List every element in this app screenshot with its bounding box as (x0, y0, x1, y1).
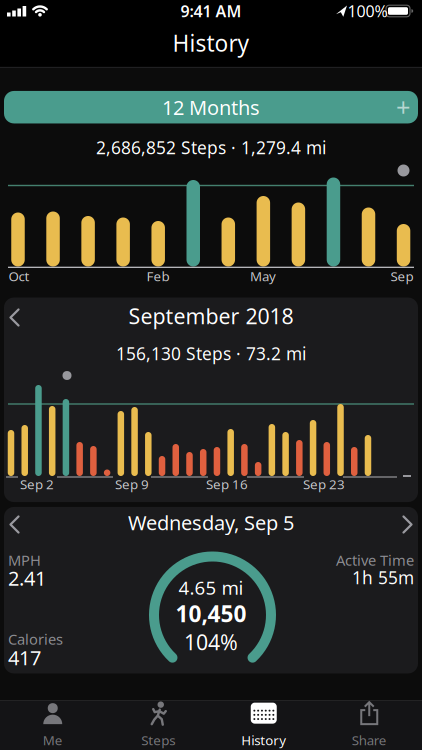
staticText: 4.65 mi (178, 575, 243, 600)
staticText: Feb (146, 267, 169, 285)
staticText: 417 (8, 644, 41, 671)
staticText: Sep 16 (206, 475, 248, 493)
staticText: 10,450 (175, 598, 246, 628)
staticText: 2.41 (8, 565, 46, 591)
staticText: Sep 23 (303, 475, 345, 493)
staticText: 156,130 Steps · 73.2 mi (116, 342, 306, 365)
staticText: Steps (141, 731, 175, 749)
staticText: Oct (8, 267, 29, 285)
staticText: September 2018 (128, 302, 293, 330)
staticText: 104% (184, 628, 238, 656)
button[interactable] (4, 507, 418, 673)
button[interactable]: Me (0, 700, 105, 749)
button[interactable]: Steps (106, 700, 211, 749)
staticText: 9:41 AM (180, 0, 241, 22)
staticText: MPH (8, 550, 41, 570)
staticText: Share (352, 731, 387, 749)
staticText: + (396, 90, 410, 124)
staticText: History (241, 731, 286, 749)
button[interactable]: Next day (396, 512, 418, 536)
staticText: Me (43, 731, 63, 749)
button[interactable]: 12 Months (4, 91, 418, 123)
staticText: 12 Months (162, 94, 260, 120)
staticText: History (172, 28, 249, 58)
button[interactable]: Previous month (3, 305, 25, 329)
staticText: 1h 55m (352, 566, 414, 589)
button[interactable]: History (211, 700, 316, 749)
staticText: Sep 9 (115, 475, 149, 493)
staticText: Sep (390, 267, 413, 285)
staticText: Active Time (336, 550, 414, 570)
staticText: May (250, 267, 276, 285)
staticText: 2,686,852 Steps · 1,279.4 mi (96, 136, 326, 159)
button[interactable]: Previous day (3, 512, 25, 536)
button[interactable] (4, 298, 418, 502)
staticText: Calories (8, 629, 63, 649)
staticText: 100% (347, 0, 387, 22)
staticText: Sep 2 (20, 475, 54, 493)
staticText: Wednesday, Sep 5 (128, 509, 294, 536)
button[interactable]: Share (317, 700, 422, 749)
